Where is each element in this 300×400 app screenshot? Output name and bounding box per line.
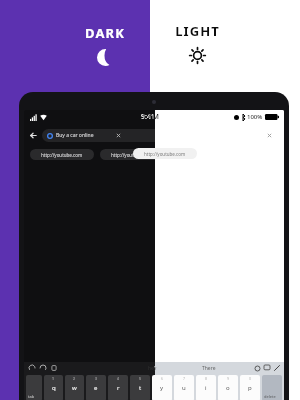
other: Clear query: [116, 133, 121, 138]
staticText: tab: [28, 394, 35, 399]
button[interactable]: http://youtube.com: [133, 148, 197, 159]
button[interactable]: 0: [240, 375, 260, 400]
staticText: o: [226, 384, 230, 392]
staticText: "The": [154, 365, 167, 372]
staticText: http://youtube.com: [144, 151, 186, 157]
other: Handwriting: [274, 365, 280, 371]
button[interactable]: LIGHT: [154, 22, 240, 64]
button[interactable]: 3: [86, 375, 106, 400]
staticText: 2: [73, 376, 76, 381]
button[interactable]: 6: [152, 375, 172, 400]
staticText: e: [94, 384, 98, 392]
staticText: 1: [52, 376, 55, 381]
button[interactable]: 2: [65, 375, 84, 400]
staticText: q: [52, 384, 56, 392]
staticText: 7: [183, 376, 186, 381]
staticText: 0: [249, 376, 252, 381]
staticText: 6: [161, 376, 164, 381]
other: Emoji: [255, 366, 260, 371]
staticText: y: [160, 384, 164, 392]
other: Light theme: [189, 47, 206, 64]
staticText: 5: [139, 376, 142, 381]
staticText: Buy a car online: [56, 132, 94, 139]
staticText: 100%: [247, 113, 263, 121]
button[interactable]: delete: [262, 375, 282, 400]
staticText: p: [248, 384, 252, 392]
button[interactable]: Clear: [155, 127, 284, 144]
button[interactable]: http://youtube.com: [100, 149, 164, 160]
staticText: w: [72, 384, 77, 392]
button[interactable]: http://youtube.com: [30, 149, 94, 160]
other: Dark theme: [97, 49, 114, 66]
other: Clipboard: [51, 365, 57, 371]
staticText: hey: [148, 365, 157, 372]
staticText: r: [117, 384, 120, 392]
staticText: 8: [205, 376, 208, 381]
staticText: http://youtube.com: [111, 152, 153, 158]
staticText: 9: [227, 376, 230, 381]
staticText: DARK: [85, 24, 125, 42]
staticText: 4: [117, 376, 120, 381]
button[interactable]: 9: [218, 375, 238, 400]
staticText: http://youtube.com: [41, 152, 83, 158]
other: Undo: [29, 365, 35, 371]
button[interactable]: tab: [26, 375, 42, 400]
button[interactable]: 7: [174, 375, 194, 400]
staticText: i: [205, 384, 207, 392]
other: Settings: [264, 365, 270, 371]
button[interactable]: DARK: [62, 24, 148, 66]
button[interactable]: 1: [44, 375, 63, 400]
staticText: 3: [95, 376, 98, 381]
button[interactable]: 4: [108, 375, 128, 400]
staticText: 9:41 AM: [141, 112, 168, 122]
button[interactable]: http://youtube.com: [170, 149, 234, 160]
staticText: There: [202, 365, 216, 372]
staticText: delete: [264, 394, 276, 399]
other: Back: [29, 131, 38, 140]
staticText: http://youtube.com: [181, 152, 223, 158]
staticText: 1 AM: [142, 112, 159, 122]
other: Redo: [40, 365, 46, 371]
other: Clear: [267, 133, 272, 138]
staticText: t: [139, 384, 142, 392]
button[interactable]: 8: [196, 375, 216, 400]
staticText: u: [182, 384, 186, 392]
button[interactable]: 5: [130, 375, 150, 400]
staticText: LIGHT: [175, 22, 220, 40]
button[interactable]: Back: [24, 127, 284, 144]
